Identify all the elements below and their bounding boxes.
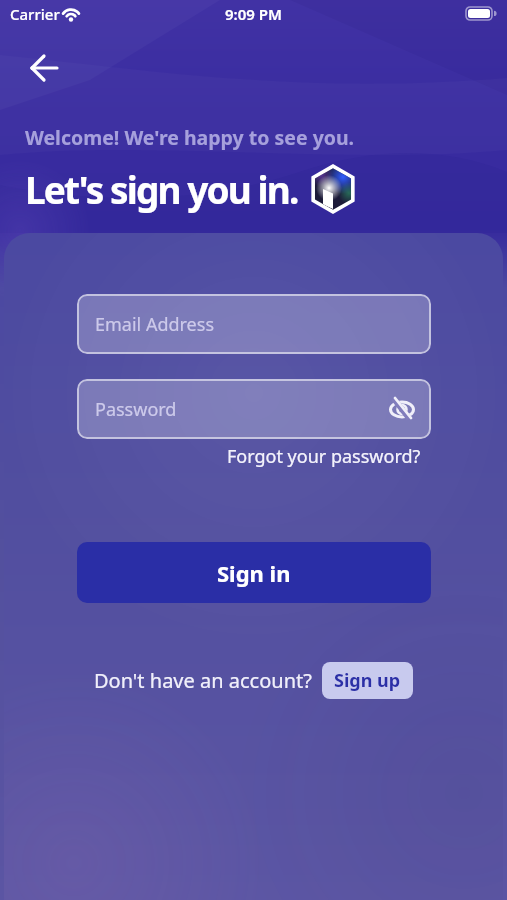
button[interactable] (387, 394, 417, 424)
button[interactable]: Email Address (77, 294, 431, 354)
button[interactable] (18, 42, 70, 94)
staticText: Carrier (10, 4, 60, 24)
staticText: Don't have an account? (94, 667, 312, 694)
staticText: 9:09 PM (225, 4, 282, 24)
staticText: Forgot your password? (227, 444, 421, 469)
button[interactable]: Sign in (77, 542, 431, 603)
staticText: Welcome! We're happy to see you. (25, 124, 355, 151)
button[interactable]: Forgot your password? (77, 444, 421, 469)
button[interactable]: Password (77, 379, 431, 439)
staticText: Email Address (95, 312, 215, 337)
staticText: Password (95, 397, 177, 422)
staticText: Let's sign you in. (25, 164, 298, 214)
button[interactable]: Sign up (322, 662, 413, 699)
staticText: Sign in (217, 558, 291, 588)
staticText: Sign up (334, 668, 401, 693)
